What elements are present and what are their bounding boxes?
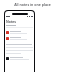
button[interactable] (6, 31, 33, 34)
button[interactable] (6, 37, 33, 40)
staticText: Notes (6, 19, 17, 24)
button[interactable]: Open note (6, 57, 29, 60)
staticText: All notes in one place (14, 2, 51, 7)
